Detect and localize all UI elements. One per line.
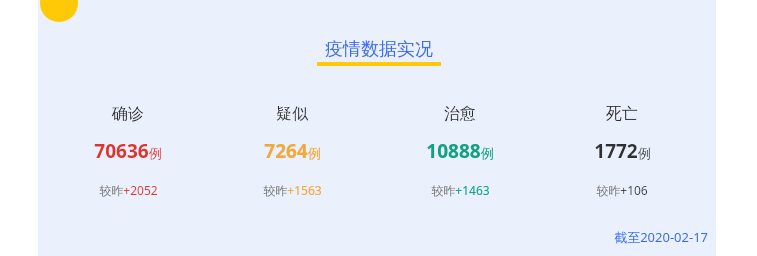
staticText: 70636例: [94, 138, 162, 164]
staticText: 治愈: [444, 104, 476, 124]
staticText: 较昨+106: [596, 182, 648, 198]
staticText: 较昨+2052: [99, 182, 158, 198]
staticText: 截至2020-02-17: [614, 228, 708, 246]
staticText: 10888例: [426, 138, 494, 164]
staticText: 较昨+1463: [431, 182, 490, 198]
button[interactable]: [38, 0, 716, 256]
staticText: 疑似: [276, 104, 308, 124]
button[interactable]: 疑似: [217, 104, 367, 198]
button[interactable]: 截至2020-02-17: [576, 226, 708, 248]
staticText: 7264例: [264, 138, 321, 164]
staticText: 1772例: [594, 138, 651, 164]
button[interactable]: 治愈: [385, 104, 535, 198]
staticText: 较昨+1563: [263, 182, 322, 198]
staticText: 确诊: [112, 104, 144, 124]
staticText: 疫情数据实况: [325, 38, 433, 61]
button[interactable]: 确诊: [53, 104, 203, 198]
staticText: 死亡: [606, 104, 638, 124]
button[interactable]: 死亡: [547, 104, 697, 198]
button[interactable]: 疫情数据实况: [310, 38, 448, 68]
